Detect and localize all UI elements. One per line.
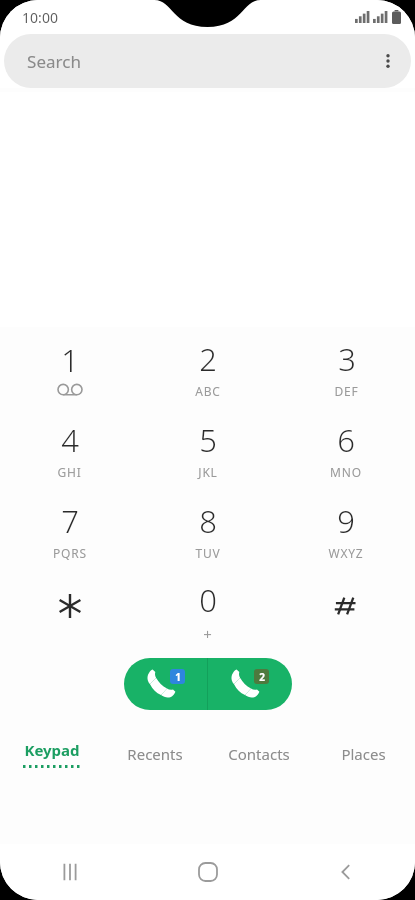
- button[interactable]: Key 8: [139, 490, 277, 571]
- button[interactable]: Key *: [0, 571, 139, 652]
- staticText: Contacts: [228, 744, 290, 764]
- staticText: PQRS: [53, 545, 87, 561]
- button[interactable]: Recent apps: [0, 844, 139, 900]
- staticText: MNO: [330, 464, 362, 480]
- button[interactable]: Contacts: [207, 732, 311, 776]
- staticText: 2: [259, 670, 265, 684]
- button[interactable]: Key 7: [0, 490, 139, 571]
- button[interactable]: Search: [4, 34, 411, 88]
- button[interactable]: Key 6: [277, 409, 415, 490]
- staticText: 7: [61, 500, 79, 542]
- staticText: DEF: [334, 383, 359, 399]
- button[interactable]: Key 3: [277, 328, 415, 409]
- staticText: 9: [337, 500, 355, 542]
- staticText: 5: [199, 419, 217, 461]
- staticText: TUV: [195, 545, 221, 561]
- staticText: 10:00: [22, 8, 58, 27]
- button[interactable]: Key 4: [0, 409, 139, 490]
- button[interactable]: Recents: [103, 732, 207, 776]
- button[interactable]: Key 0: [139, 571, 277, 652]
- staticText: ABC: [195, 383, 221, 399]
- staticText: 0: [199, 579, 217, 621]
- staticText: JKL: [198, 464, 218, 480]
- button[interactable]: Key 5: [139, 409, 277, 490]
- button[interactable]: Keypad: [0, 732, 103, 776]
- staticText: Search: [27, 50, 81, 73]
- staticText: 4: [61, 419, 79, 461]
- button[interactable]: More options: [365, 38, 411, 84]
- staticText: 2: [199, 338, 217, 380]
- button[interactable]: Key #: [277, 571, 415, 652]
- staticText: 3: [338, 338, 356, 380]
- staticText: WXYZ: [328, 545, 364, 561]
- button[interactable]: Call with SIM 1: [124, 658, 207, 710]
- staticText: 1: [175, 670, 181, 684]
- button[interactable]: Key 2: [139, 328, 277, 409]
- button[interactable]: Home: [139, 844, 277, 900]
- staticText: 6: [337, 419, 355, 461]
- staticText: 1: [61, 339, 79, 381]
- staticText: Places: [341, 744, 386, 764]
- staticText: Keypad: [24, 740, 80, 760]
- staticText: 8: [199, 500, 217, 542]
- staticText: GHI: [57, 464, 82, 480]
- button[interactable]: Places: [311, 732, 415, 776]
- staticText: +: [203, 624, 213, 644]
- staticText: Recents: [127, 744, 183, 764]
- button[interactable]: Key 1: [0, 328, 139, 409]
- button[interactable]: Key 9: [277, 490, 415, 571]
- button[interactable]: Back: [277, 844, 415, 900]
- button[interactable]: Call with SIM 2: [208, 658, 292, 710]
